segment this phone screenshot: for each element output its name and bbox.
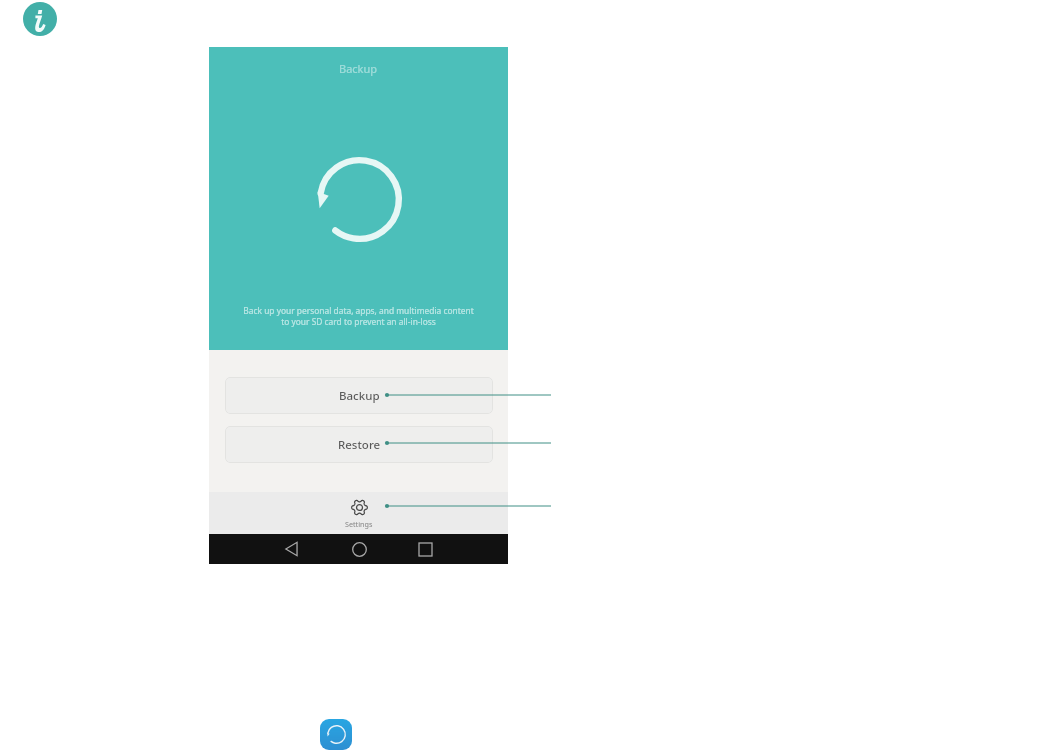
staticText: Back up your personal data, apps, and mu… bbox=[243, 305, 474, 327]
button[interactable]: Info bbox=[23, 2, 57, 36]
button[interactable]: Back bbox=[277, 534, 307, 564]
staticText: Backup bbox=[339, 61, 378, 76]
button[interactable]: Backup bbox=[225, 377, 493, 414]
button[interactable]: Settings bbox=[209, 492, 508, 534]
staticText: Restore bbox=[338, 437, 381, 453]
button[interactable]: Home bbox=[344, 534, 374, 564]
button[interactable]: Backup app bbox=[320, 719, 352, 750]
staticText: Backup bbox=[339, 388, 380, 404]
button[interactable]: Restore bbox=[225, 426, 493, 463]
staticText: Settings bbox=[345, 519, 373, 529]
button[interactable]: Recents bbox=[410, 534, 440, 564]
